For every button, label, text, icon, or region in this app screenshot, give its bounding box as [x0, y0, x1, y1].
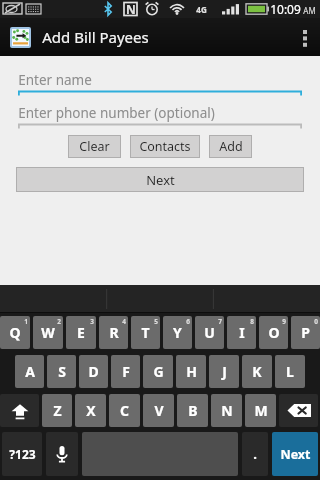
button[interactable]: C — [109, 394, 140, 427]
staticText: B — [188, 401, 198, 420]
button[interactable]: S — [47, 355, 76, 388]
button[interactable]: Y — [163, 316, 192, 349]
staticText: 2 — [57, 317, 61, 326]
button[interactable]: Next — [16, 167, 304, 192]
staticText: Q — [9, 323, 21, 342]
button[interactable]: P — [291, 316, 320, 349]
staticText: Y — [173, 323, 182, 342]
staticText: 8 — [250, 317, 254, 326]
button[interactable]: R — [99, 316, 128, 349]
staticText: 10:09 — [270, 1, 301, 17]
button[interactable]: J — [209, 355, 239, 388]
staticText: L — [286, 362, 294, 381]
button[interactable]: Shift — [0, 394, 39, 427]
staticText: O — [268, 323, 280, 342]
button[interactable]: O — [259, 316, 288, 349]
staticText: G — [153, 362, 164, 381]
button[interactable]: V — [143, 394, 174, 427]
staticText: A — [25, 362, 35, 381]
button[interactable]: Next — [272, 432, 318, 476]
staticText: 1 — [24, 317, 28, 326]
staticText: AM — [303, 5, 316, 16]
button[interactable]: E — [66, 316, 96, 349]
staticText: Add — [219, 138, 243, 155]
staticText: 4 — [122, 317, 126, 326]
staticText: T — [141, 323, 150, 342]
staticText: 3 — [90, 317, 94, 326]
button[interactable]: Z — [42, 394, 72, 427]
staticText: 6 — [186, 317, 190, 326]
button[interactable]: D — [79, 355, 108, 388]
button[interactable]: Voice input — [46, 432, 78, 476]
staticText: N — [126, 1, 136, 17]
staticText: 4G — [196, 4, 207, 15]
staticText: R — [109, 323, 119, 342]
button[interactable]: Enter phone number (optional) — [18, 102, 302, 128]
button[interactable]: H — [176, 355, 206, 388]
button[interactable]: L — [275, 355, 305, 388]
staticText: H — [186, 362, 197, 381]
staticText: Clear — [79, 138, 110, 155]
staticText: Z — [53, 401, 62, 420]
staticText: V — [154, 401, 164, 420]
staticText: 0 — [314, 317, 318, 326]
button[interactable]: Delete — [279, 394, 318, 427]
button[interactable]: Contacts — [130, 135, 200, 158]
staticText: D — [88, 362, 99, 381]
button[interactable]: Add — [209, 135, 252, 158]
button[interactable]: Clear — [68, 135, 121, 158]
button[interactable]: U — [195, 316, 224, 349]
staticText: . — [253, 445, 257, 463]
staticText: J — [222, 362, 227, 381]
staticText: S — [58, 362, 66, 381]
staticText: Enter phone number (optional) — [18, 104, 215, 122]
staticText: F — [122, 362, 130, 381]
button[interactable]: Q — [0, 316, 30, 349]
staticText: P — [301, 323, 310, 342]
staticText: K — [252, 362, 262, 381]
button[interactable]: B — [177, 394, 208, 427]
button[interactable]: . — [242, 432, 268, 476]
button[interactable]: ?123 — [2, 432, 42, 476]
button[interactable]: A — [15, 355, 44, 388]
staticText: U — [204, 323, 215, 342]
staticText: 9 — [282, 317, 286, 326]
staticText: W — [41, 323, 55, 342]
staticText: 7 — [218, 317, 222, 326]
staticText: N — [221, 401, 233, 420]
staticText: I — [239, 323, 245, 342]
staticText: C — [120, 401, 129, 420]
button[interactable]: T — [131, 316, 160, 349]
button[interactable]: G — [143, 355, 173, 388]
staticText: ?123 — [9, 446, 36, 462]
staticText: Contacts — [139, 138, 191, 155]
staticText: Enter name — [18, 71, 92, 89]
button[interactable]: Enter name — [18, 69, 302, 95]
staticText: E — [77, 323, 85, 342]
button[interactable]: K — [242, 355, 272, 388]
button[interactable]: I — [227, 316, 256, 349]
staticText: Add Bill Payees — [42, 27, 149, 47]
staticText: X — [86, 401, 96, 420]
staticText: 5 — [154, 317, 158, 326]
staticText: Next — [280, 446, 311, 463]
button[interactable]: M — [245, 394, 276, 427]
staticText: Next — [146, 171, 175, 189]
button[interactable]: N — [211, 394, 242, 427]
staticText: M — [254, 401, 268, 420]
button[interactable]: X — [75, 394, 106, 427]
button[interactable]: W — [33, 316, 63, 349]
button[interactable]: F — [111, 355, 140, 388]
button[interactable]: More options — [290, 18, 320, 56]
